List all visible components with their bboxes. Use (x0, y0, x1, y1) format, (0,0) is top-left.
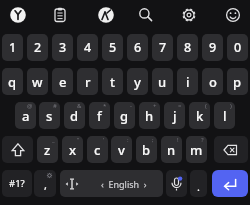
staticText: 6 (134, 39, 142, 56)
button[interactable]: 4 (77, 34, 98, 61)
staticText: c (94, 141, 101, 159)
staticText: 0 (234, 39, 242, 56)
button[interactable]: w (27, 68, 48, 95)
staticText: 8 (184, 39, 192, 56)
button[interactable]: f (89, 102, 110, 129)
staticText: ; (152, 136, 154, 144)
button[interactable]: n (161, 136, 182, 163)
button[interactable]: p (227, 68, 248, 95)
staticText: q (8, 73, 17, 91)
staticText: x (69, 141, 77, 159)
staticText: w (32, 73, 43, 91)
staticText: p (233, 73, 242, 91)
staticText: v (118, 141, 125, 159)
staticText: + (153, 102, 157, 110)
staticText: h (145, 107, 154, 125)
button[interactable]: v (111, 136, 132, 163)
staticText: t (110, 73, 115, 91)
button[interactable]: m (186, 136, 207, 163)
button[interactable]: 8 (177, 34, 198, 61)
staticText: - (130, 102, 132, 110)
button[interactable]: t (102, 68, 123, 95)
button[interactable]: 9 (202, 34, 223, 61)
button[interactable]: k (189, 102, 210, 129)
staticText: d (70, 107, 79, 125)
staticText: 2 (34, 39, 42, 56)
staticText: 4 (84, 39, 92, 56)
staticText: s (46, 107, 53, 125)
staticText: 3 (59, 39, 67, 56)
staticText: 9 (209, 39, 217, 56)
button[interactable]: 6 (127, 34, 148, 61)
button[interactable] (133, 2, 159, 28)
staticText: #1? (9, 177, 25, 190)
button[interactable]: c (87, 136, 108, 163)
button[interactable]: , (34, 170, 56, 197)
button[interactable]: j (164, 102, 185, 129)
button[interactable]: d (64, 102, 85, 129)
button[interactable]: 5 (102, 34, 123, 61)
button[interactable]: b (136, 136, 157, 163)
button[interactable]: #1? (2, 170, 32, 197)
button[interactable]: 3 (52, 34, 73, 61)
button[interactable]: l (214, 102, 235, 129)
button[interactable] (214, 136, 248, 163)
staticText: # (53, 102, 57, 110)
button[interactable] (166, 170, 187, 197)
button[interactable]: x (62, 136, 83, 163)
staticText: & (77, 102, 82, 110)
staticText: z (44, 141, 51, 159)
staticText: b (142, 141, 151, 159)
staticText: j (173, 107, 177, 125)
button[interactable]: h (139, 102, 160, 129)
staticText: ' (103, 136, 105, 144)
button[interactable] (220, 2, 246, 28)
button[interactable]: z (37, 136, 58, 163)
button[interactable]: s (39, 102, 60, 129)
staticText: k (196, 107, 204, 125)
button[interactable]: r (77, 68, 98, 95)
button[interactable]: i (177, 68, 198, 95)
button[interactable]: y (127, 68, 148, 95)
button[interactable] (5, 2, 31, 28)
staticText: * (103, 102, 107, 110)
button[interactable] (93, 2, 119, 28)
button[interactable]: 7 (152, 34, 173, 61)
staticText: i (186, 73, 190, 91)
button[interactable]: 0 (227, 34, 248, 61)
staticText: n (167, 141, 176, 159)
staticText: a (22, 107, 30, 125)
staticText: ? (201, 136, 204, 144)
button[interactable] (2, 136, 33, 163)
staticText: l (223, 107, 227, 125)
staticText: , (44, 177, 47, 192)
staticText: m (190, 141, 203, 159)
button[interactable]: ‹ English › (84, 170, 163, 197)
staticText: ( (205, 102, 207, 110)
staticText: ! (177, 136, 179, 144)
button[interactable]: q (2, 68, 23, 95)
staticText: 5 (109, 39, 117, 56)
button[interactable] (212, 170, 248, 197)
button[interactable] (176, 2, 202, 28)
staticText: _ (52, 136, 55, 144)
button[interactable]: 1 (2, 34, 23, 61)
staticText: y (134, 73, 141, 91)
button[interactable] (60, 170, 84, 197)
button[interactable]: . (190, 170, 207, 197)
button[interactable]: e (52, 68, 73, 95)
staticText: r (85, 73, 91, 91)
button[interactable]: g (114, 102, 135, 129)
staticText: ) (230, 102, 232, 110)
staticText: u (158, 73, 167, 91)
button[interactable]: 2 (27, 34, 48, 61)
staticText: o (209, 73, 217, 91)
button[interactable]: o (202, 68, 223, 95)
staticText: e (59, 73, 67, 91)
staticText: ‹ English › (101, 178, 147, 190)
staticText: g (120, 107, 129, 125)
button[interactable] (47, 2, 73, 28)
button[interactable]: a (15, 102, 36, 129)
staticText: : (127, 136, 129, 144)
button[interactable]: u (152, 68, 173, 95)
